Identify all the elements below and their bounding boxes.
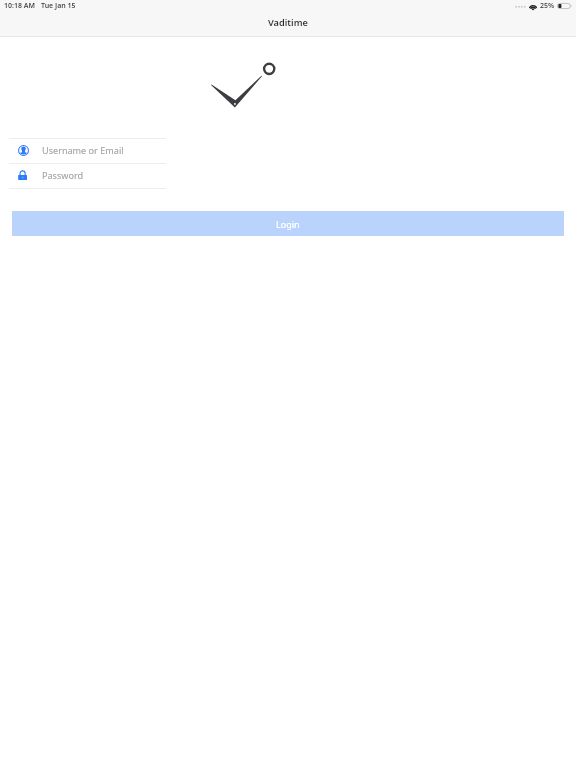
staticText: Username or Email — [42, 144, 124, 156]
staticText: 25% — [540, 1, 555, 11]
other: Password — [18, 170, 29, 181]
staticText: Login — [276, 218, 300, 230]
staticText: 10:18 AM — [4, 1, 35, 11]
button[interactable]: Password — [9, 164, 166, 188]
staticText: Password — [42, 169, 84, 181]
staticText: Tue Jan 15 — [41, 1, 76, 11]
button[interactable]: Login — [12, 211, 564, 236]
other: Account — [18, 145, 29, 156]
staticText: Vaditime — [268, 16, 308, 29]
button[interactable]: Account — [9, 139, 166, 163]
